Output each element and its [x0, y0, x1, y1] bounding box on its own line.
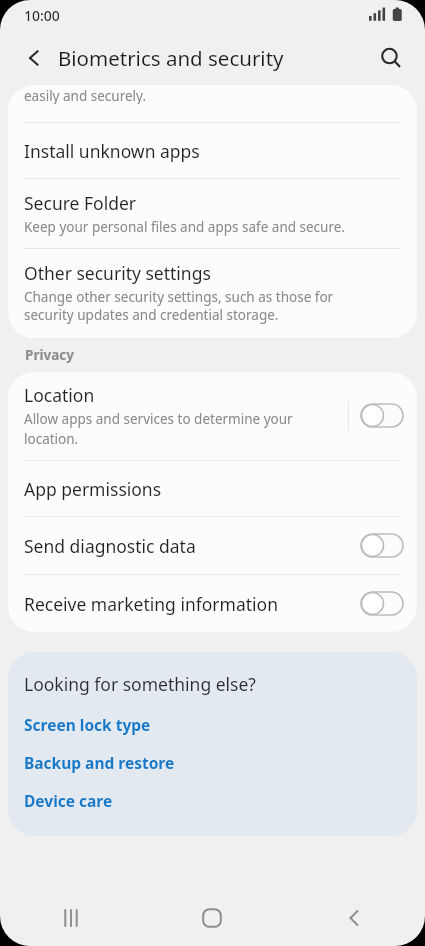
staticText: Allow apps and services to determine you… — [24, 410, 293, 448]
staticText: Privacy — [25, 346, 74, 364]
button[interactable]: Send diagnostic data — [8, 517, 417, 574]
staticText: Change other security settings, such as … — [24, 288, 377, 324]
staticText: 10:00 — [24, 6, 60, 25]
button[interactable]: Use biometric authentication to verify y… — [8, 85, 417, 122]
button[interactable]: Location toggle — [360, 403, 404, 428]
staticText: Send diagnostic data — [24, 534, 196, 558]
button[interactable]: Other security settings — [8, 249, 417, 338]
staticText: Receive marketing information — [24, 592, 279, 616]
staticText: Screen lock type — [24, 714, 151, 735]
button[interactable]: Install unknown apps — [8, 123, 417, 178]
staticText: Device care — [24, 790, 113, 811]
button[interactable]: Recents — [0, 890, 141, 946]
button[interactable]: Search — [369, 36, 413, 80]
staticText: App permissions — [24, 477, 162, 501]
button[interactable]: Back — [14, 38, 54, 78]
staticText: Use biometric authentication to verify y… — [24, 85, 347, 104]
staticText: Keep your personal files and apps safe a… — [24, 218, 345, 236]
button[interactable]: Home — [141, 890, 283, 946]
staticText: Looking for something else? — [24, 672, 256, 696]
button[interactable]: Location — [8, 372, 417, 460]
staticText: Secure Folder — [24, 191, 137, 215]
staticText: Biometrics and security — [58, 44, 284, 72]
button[interactable]: Backup and restore — [24, 747, 401, 778]
button[interactable]: Back — [283, 890, 425, 946]
button[interactable]: Secure Folder — [8, 179, 417, 248]
button[interactable]: Device care — [24, 785, 401, 816]
button[interactable]: Screen lock type — [24, 709, 401, 740]
staticText: Other security settings — [24, 261, 211, 285]
staticText: Location — [24, 383, 95, 407]
button[interactable]: App permissions — [8, 461, 417, 516]
staticText: Install unknown apps — [24, 139, 200, 163]
button[interactable]: Receive marketing information — [8, 575, 417, 632]
staticText: Backup and restore — [24, 752, 175, 773]
